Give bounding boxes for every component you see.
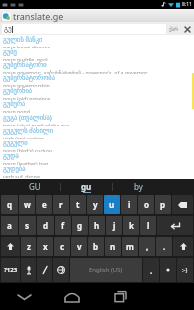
button[interactable]: w — [19, 195, 35, 214]
button[interactable]: English (US) — [70, 258, 142, 282]
button[interactable]: l — [140, 216, 156, 235]
button[interactable]: Shift — [1, 237, 20, 256]
button[interactable]: p — [155, 195, 171, 214]
staticText: noun (also) pupil of the eye. — [3, 122, 71, 126]
button[interactable]: translate.ge — [0, 9, 194, 22]
staticText: l — [147, 220, 150, 231]
staticText: noun pond. — [3, 108, 32, 113]
button[interactable]: ?123 — [1, 258, 20, 282]
staticText: noun puddle, pool — [3, 56, 48, 61]
button[interactable]: Home — [48, 283, 96, 310]
button[interactable]: გუბერნატორი — [0, 61, 194, 74]
button[interactable]: Clear — [182, 24, 192, 34]
button[interactable]: გუ — [2, 24, 166, 34]
button[interactable]: z — [21, 237, 36, 256]
staticText: w — [24, 199, 31, 210]
button[interactable]: Change language — [53, 258, 69, 282]
button[interactable]: j — [106, 216, 122, 235]
button[interactable]: r — [53, 195, 69, 214]
button[interactable]: გუგული — [0, 139, 194, 152]
button[interactable]: გუდა — [0, 152, 194, 165]
button[interactable]: h — [89, 216, 105, 235]
staticText: gu — [81, 181, 92, 192]
staticText: . — [150, 265, 153, 276]
button[interactable]: Enter — [157, 216, 193, 235]
staticText: d — [43, 220, 49, 231]
button[interactable]: u — [104, 195, 120, 214]
staticText: 8:11 — [182, 1, 192, 8]
staticText: q — [7, 199, 13, 210]
staticText: გუბერნია — [3, 87, 33, 95]
staticText: p — [160, 199, 166, 210]
button[interactable]: Voice input — [21, 258, 36, 282]
button[interactable]: გუბერნია — [0, 87, 194, 100]
button[interactable]: გუგა (თვალისა) — [0, 113, 194, 126]
button[interactable]: გუბე — [0, 48, 194, 61]
staticText: გუდება — [3, 165, 26, 173]
staticText: b — [93, 241, 99, 252]
staticText: k — [129, 220, 134, 231]
staticText: noun (bird's) cuckoo. — [3, 147, 54, 152]
staticText: გუ — [4, 25, 12, 33]
button[interactable]: v — [71, 237, 87, 256]
button[interactable]: Handwriting — [37, 258, 52, 282]
staticText: გუბე — [3, 48, 17, 56]
button[interactable]: გუდება — [0, 165, 194, 178]
button[interactable]: ქარ — [169, 26, 179, 32]
button[interactable]: Hide keyboard — [0, 283, 48, 310]
staticText: გუბერნატორი — [3, 61, 47, 69]
button[interactable]: c — [54, 237, 70, 256]
staticText: m — [126, 241, 134, 252]
button[interactable]: . — [143, 258, 159, 282]
button[interactable]: d — [37, 216, 54, 235]
button[interactable]: a — [1, 216, 18, 235]
button[interactable]: gu — [61, 179, 112, 194]
staticText: გუბურა — [3, 100, 26, 108]
staticText: verb suf. drone. — [3, 173, 42, 178]
staticText: g — [77, 220, 83, 231]
button[interactable]: Shift — [173, 237, 193, 256]
button[interactable]: e — [36, 195, 52, 214]
staticText: . — [163, 241, 166, 252]
button[interactable]: x — [37, 237, 53, 256]
staticText: noun (old) province — [3, 95, 51, 100]
button[interactable]: q — [1, 195, 18, 214]
button[interactable]: გუგულს ძახილი — [0, 126, 194, 139]
button[interactable]: გულის მანკი — [0, 35, 194, 48]
button[interactable]: m — [122, 237, 138, 256]
button[interactable]: :-) — [177, 258, 193, 282]
button[interactable]: g — [72, 216, 88, 235]
button[interactable]: i — [121, 195, 137, 214]
staticText: GU — [29, 181, 41, 192]
button[interactable]: Settings — [160, 258, 176, 282]
staticText: n — [110, 241, 116, 252]
button[interactable]: გუბერნატორობა — [0, 74, 194, 87]
button[interactable]: Recent apps — [96, 283, 145, 310]
staticText: გუგულს ძახილი — [3, 126, 54, 135]
button[interactable]: GU — [10, 179, 60, 194]
staticText: v — [77, 241, 82, 252]
staticText: noun governorship. — [3, 82, 52, 87]
button[interactable]: , — [139, 237, 155, 256]
button[interactable]: გუბურა — [0, 100, 194, 113]
staticText: o — [144, 199, 149, 210]
button[interactable]: o — [138, 195, 154, 214]
staticText: z — [27, 241, 31, 252]
staticText: verb (cry) cuckoo. — [3, 135, 46, 139]
button[interactable]: by — [113, 179, 164, 194]
button[interactable]: t — [70, 195, 86, 214]
button[interactable]: k — [123, 216, 139, 235]
button[interactable]: n — [105, 237, 121, 256]
button[interactable]: b — [88, 237, 104, 256]
staticText: noun (leather) bag — [3, 160, 49, 165]
button[interactable]: f — [55, 216, 71, 235]
staticText: f — [61, 220, 65, 231]
staticText: , — [146, 241, 149, 252]
staticText: გუბერნატორობა — [3, 74, 56, 82]
button[interactable]: Backspace — [172, 195, 193, 214]
button[interactable]: y — [87, 195, 103, 214]
button[interactable]: . — [156, 237, 172, 256]
staticText: r — [59, 199, 63, 210]
staticText: u — [109, 199, 115, 210]
button[interactable]: s — [19, 216, 36, 235]
